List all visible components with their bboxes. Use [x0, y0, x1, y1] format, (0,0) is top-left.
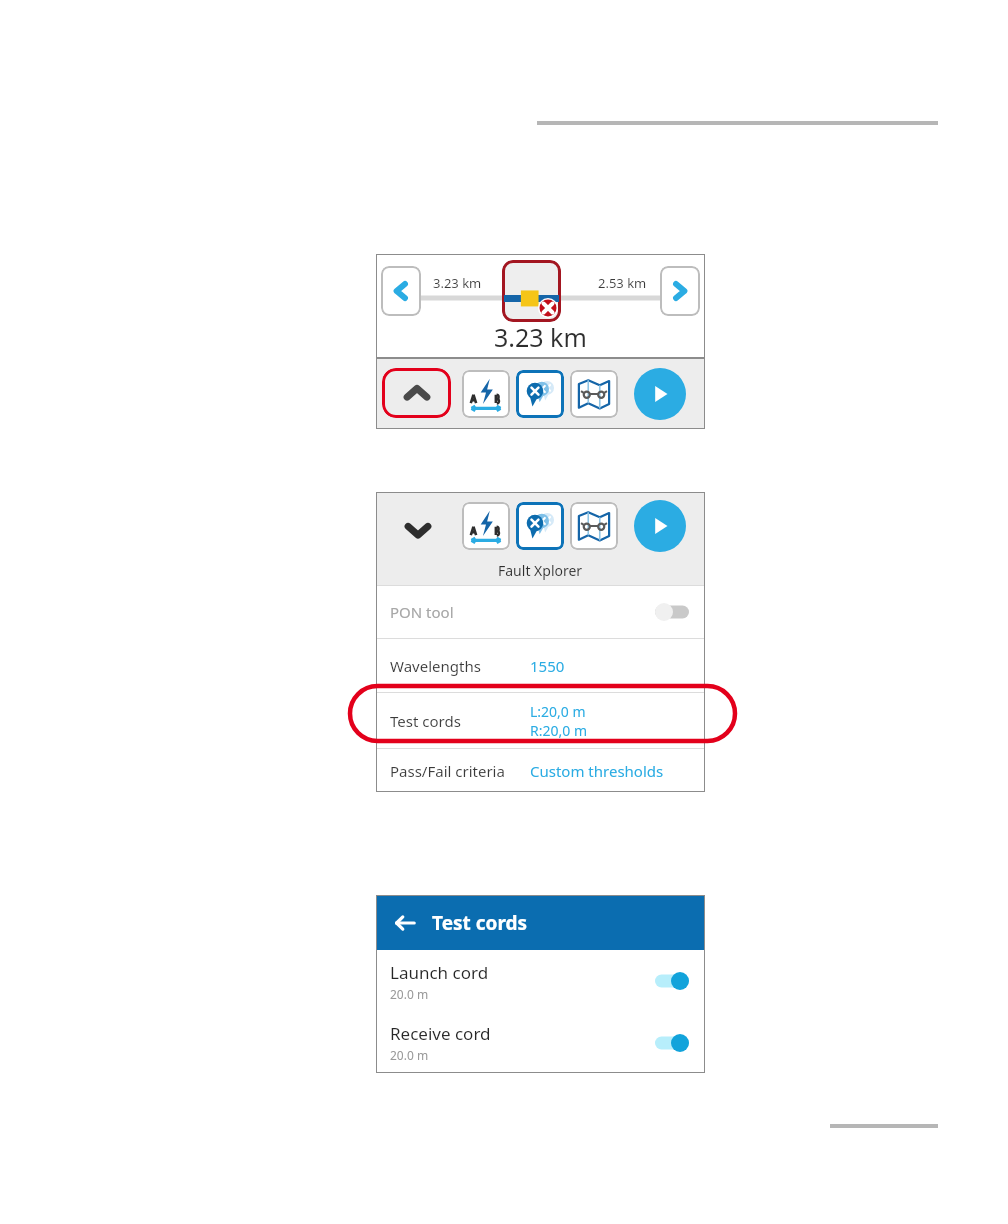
staticText: 20.0 m [390, 1047, 429, 1063]
button[interactable]: Fault Xplorer mode [516, 370, 564, 418]
staticText: R:20,0 m [530, 721, 587, 740]
button[interactable] [502, 260, 561, 322]
staticText: 1550 [530, 656, 565, 676]
button[interactable]: Receive cord [376, 1012, 705, 1073]
button[interactable]: PON tool [376, 586, 705, 638]
button[interactable]: Test cords [376, 693, 705, 748]
button[interactable]: Collapse panel [382, 368, 451, 418]
button[interactable]: Launch cord [376, 950, 705, 1012]
button[interactable]: Fiber link mode [462, 502, 510, 550]
button[interactable]: Next section [660, 266, 700, 316]
staticText: Receive cord [390, 1022, 491, 1045]
button[interactable]: Fiber map mode [570, 502, 618, 550]
staticText: Test cords [432, 910, 528, 936]
staticText: Test cords [390, 711, 530, 731]
staticText: Launch cord [390, 961, 489, 984]
button[interactable]: Start test [634, 500, 686, 552]
staticText: Fault Xplorer [498, 561, 583, 580]
staticText: Custom thresholds [530, 761, 664, 781]
button[interactable]: Previous section [381, 266, 421, 316]
button[interactable]: Fiber map mode [570, 370, 618, 418]
staticText: L:20,0 m [530, 702, 586, 721]
staticText: Pass/Fail criteria [390, 761, 530, 781]
staticText: 3.23 km [494, 320, 587, 354]
button[interactable]: Wavelengths [376, 639, 705, 692]
button[interactable]: Fiber link mode [462, 370, 510, 418]
staticText: 3.23 km [433, 274, 482, 292]
staticText: 20.0 m [390, 986, 429, 1002]
staticText: PON tool [390, 602, 454, 622]
button[interactable]: Pass/Fail criteria [376, 749, 705, 792]
staticText: Wavelengths [390, 656, 530, 676]
button[interactable]: Start test [634, 368, 686, 420]
other: Fault [538, 298, 558, 318]
button[interactable]: Fault Xplorer mode [516, 502, 564, 550]
button[interactable]: Collapse panel [398, 510, 438, 550]
staticText: 2.53 km [598, 274, 647, 292]
button[interactable]: Back [388, 906, 422, 940]
